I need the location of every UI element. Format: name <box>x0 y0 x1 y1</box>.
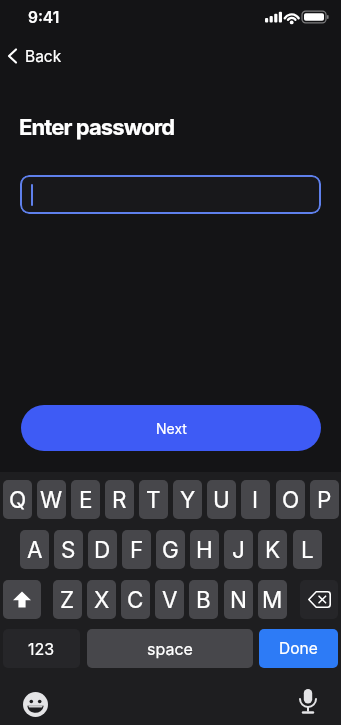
staticText: G <box>162 536 179 563</box>
button[interactable]: D <box>88 530 117 569</box>
staticText: O <box>282 486 300 513</box>
button[interactable]: P <box>310 480 339 519</box>
button[interactable]: Q <box>3 480 32 519</box>
button[interactable]: G <box>156 530 185 569</box>
button[interactable]: N <box>224 580 253 619</box>
staticText: X <box>94 586 110 613</box>
button[interactable]: W <box>37 480 66 519</box>
button[interactable]: X <box>87 580 116 619</box>
staticText: U <box>213 486 230 513</box>
staticText: V <box>162 586 178 613</box>
staticText: B <box>196 586 211 613</box>
button[interactable]: S <box>54 530 83 569</box>
button[interactable]: I <box>241 480 270 519</box>
staticText: W <box>40 486 63 513</box>
staticText: Done <box>279 639 318 658</box>
staticText: S <box>61 536 76 563</box>
staticText: K <box>265 536 281 563</box>
staticText: C <box>127 586 144 613</box>
staticText: space <box>147 639 193 658</box>
button[interactable] <box>287 680 329 724</box>
button[interactable]: B <box>189 580 218 619</box>
staticText: J <box>232 536 245 563</box>
staticText: Enter password <box>19 114 175 141</box>
button[interactable]: Next <box>21 405 321 451</box>
staticText: F <box>130 536 144 563</box>
button[interactable] <box>14 683 56 725</box>
button[interactable] <box>300 580 338 619</box>
staticText: Z <box>60 586 75 613</box>
button[interactable] <box>20 175 321 214</box>
staticText: I <box>252 486 259 513</box>
staticText: Y <box>180 486 196 513</box>
button[interactable]: 123 <box>3 629 80 668</box>
staticText: L <box>301 536 314 563</box>
button[interactable]: O <box>276 480 305 519</box>
staticText: Q <box>9 486 27 513</box>
button[interactable]: F <box>122 530 151 569</box>
button[interactable]: M <box>258 580 287 619</box>
staticText: 123 <box>28 639 55 658</box>
button[interactable]: J <box>224 530 253 569</box>
staticText: D <box>94 536 111 563</box>
staticText: N <box>230 586 247 613</box>
button[interactable]: L <box>293 530 322 569</box>
staticText: A <box>27 536 43 563</box>
staticText: E <box>79 486 93 513</box>
button[interactable]: Z <box>53 580 82 619</box>
staticText: P <box>317 486 332 513</box>
staticText: Next <box>156 420 187 437</box>
staticText: R <box>112 486 127 513</box>
button[interactable]: Back <box>7 46 62 66</box>
button[interactable]: Y <box>173 480 202 519</box>
button[interactable]: H <box>190 530 219 569</box>
staticText: T <box>146 486 161 513</box>
staticText: H <box>196 536 213 563</box>
staticText: 9:41 <box>28 8 60 27</box>
button[interactable]: E <box>71 480 100 519</box>
button[interactable]: space <box>87 629 253 668</box>
staticText: M <box>262 586 283 613</box>
button[interactable]: R <box>105 480 134 519</box>
button[interactable]: Done <box>259 629 338 668</box>
button[interactable]: C <box>121 580 150 619</box>
button[interactable]: A <box>20 530 49 569</box>
button[interactable]: T <box>139 480 168 519</box>
button[interactable]: V <box>155 580 184 619</box>
button[interactable]: U <box>207 480 236 519</box>
button[interactable]: K <box>258 530 287 569</box>
button[interactable] <box>3 580 41 619</box>
staticText: Back <box>25 47 62 66</box>
